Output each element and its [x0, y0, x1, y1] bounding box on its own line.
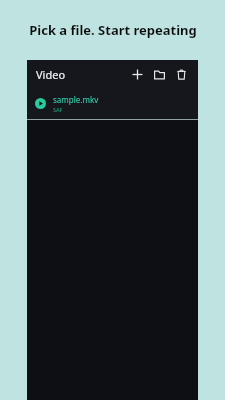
staticText: SAF — [53, 106, 63, 113]
button[interactable]: Delete — [172, 65, 191, 84]
staticText: Video — [36, 67, 66, 82]
staticText: sample.mkv — [53, 94, 99, 105]
button[interactable]: sample.mkv — [27, 88, 198, 119]
button[interactable]: Open folder — [150, 65, 169, 84]
button[interactable]: Add — [128, 65, 147, 84]
staticText: Pick a file. Start repeating — [29, 21, 197, 39]
